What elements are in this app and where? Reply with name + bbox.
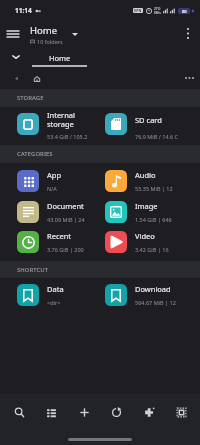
button[interactable]: Refresh	[102, 398, 130, 426]
staticText: KB/s	[154, 11, 161, 15]
staticText: Data	[47, 284, 64, 294]
staticText: 1.54 GiB | 646	[135, 216, 172, 223]
staticText: 10 folders	[37, 38, 63, 45]
staticText: CATEGORIES	[17, 150, 53, 158]
staticText: Image	[135, 201, 158, 211]
staticText: 3.42 GiB | 16	[135, 246, 169, 253]
staticText: Video	[135, 231, 155, 241]
staticText: <dir>	[47, 299, 61, 306]
staticText: Recent	[47, 231, 72, 241]
button[interactable]: New	[70, 398, 98, 426]
staticText: Home	[49, 53, 71, 63]
staticText: VPN	[134, 8, 142, 13]
staticText: Internal storage	[47, 110, 75, 129]
button[interactable]: Image	[99, 196, 194, 230]
staticText: 564.67 MiB | 12	[135, 299, 176, 306]
staticText: 53.4 GiB / 105.2	[47, 133, 88, 139]
staticText: 3.76 GiB | 200	[47, 246, 84, 253]
button[interactable]: Select all	[167, 398, 195, 426]
staticText: N/A	[47, 185, 57, 192]
staticText: Home	[30, 24, 58, 37]
button[interactable]: Home folder	[29, 71, 44, 86]
button[interactable]: Plugins	[135, 398, 163, 426]
button[interactable]: Home	[32, 48, 87, 67]
staticText: 80	[182, 9, 187, 14]
button[interactable]: Switch tab	[68, 27, 82, 41]
staticText: 11:14	[15, 6, 32, 15]
staticText: Audio	[135, 170, 156, 180]
staticText: Download	[135, 284, 171, 294]
button[interactable]: Recent	[11, 226, 106, 260]
button[interactable]: Download	[99, 279, 194, 313]
button[interactable]: Back	[9, 71, 23, 85]
staticText: 43.09 MiB | 24	[47, 216, 85, 223]
button[interactable]: Video	[99, 226, 194, 260]
button[interactable]: List view	[37, 398, 65, 426]
button[interactable]: Internal storage	[11, 108, 106, 142]
button[interactable]: Search	[5, 398, 33, 426]
button[interactable]: Path options	[182, 71, 196, 85]
button[interactable]: Document	[11, 196, 106, 230]
staticText: 27.0	[154, 7, 161, 11]
button[interactable]: Navigation menu	[3, 24, 23, 44]
staticText: App	[47, 170, 62, 180]
button[interactable]: SD card	[99, 108, 194, 142]
button[interactable]: App	[11, 165, 106, 199]
staticText: STORAGE	[17, 94, 44, 102]
staticText: 55.35 MiB | 12	[135, 185, 173, 192]
button[interactable]: Audio	[99, 165, 194, 199]
staticText: SD card	[135, 115, 162, 125]
button[interactable]: More options	[178, 23, 198, 43]
button[interactable]: Collapse	[7, 48, 24, 65]
staticText: SHORTCUT	[17, 266, 49, 274]
button[interactable]: Data	[11, 279, 106, 313]
staticText: 76.9 MiB / 14.6 C	[135, 133, 179, 139]
staticText: Document	[47, 201, 84, 211]
